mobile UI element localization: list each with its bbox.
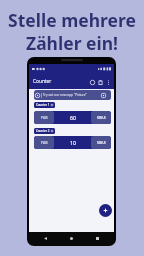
button[interactable]: More options (104, 78, 112, 86)
button[interactable]: MINUS (91, 111, 111, 124)
button[interactable]: Counter 2 (34, 128, 55, 134)
staticText: PLUS (41, 141, 48, 145)
button[interactable]: Timer (88, 78, 96, 86)
button[interactable]: Back (42, 235, 49, 242)
button[interactable]: Recents (94, 235, 101, 242)
staticText: Try out our new app "Picture" (43, 93, 87, 97)
button[interactable]: Try out our new app "Picture" (34, 90, 111, 100)
button[interactable]: MINUS (91, 136, 111, 149)
button[interactable]: Delete (96, 78, 104, 86)
staticText: 60 (70, 114, 76, 121)
button[interactable]: PLUS (34, 111, 54, 124)
staticText: Stelle mehrere Zähler ein! (8, 8, 136, 55)
button[interactable]: Home (68, 235, 75, 242)
staticText: 10 (70, 139, 76, 146)
staticText: Counter (33, 78, 52, 85)
button[interactable]: Add counter (99, 204, 112, 217)
staticText: Counter 1 (36, 103, 50, 107)
button[interactable]: Counter 1 (34, 102, 55, 108)
button[interactable]: PLUS (34, 136, 54, 149)
staticText: Counter 2 (36, 129, 50, 133)
staticText: PLUS (41, 116, 48, 120)
staticText: MINUS (97, 116, 106, 120)
staticText: MINUS (97, 141, 106, 145)
